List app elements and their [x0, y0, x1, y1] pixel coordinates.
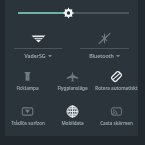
staticText: Ficklampa: [16, 85, 39, 91]
staticText: VaderSG: [24, 52, 46, 59]
button[interactable]: Bluetooth: [75, 28, 134, 59]
staticText: Bluetooth: [89, 52, 114, 59]
button[interactable]: Brightness: [5, 4, 138, 22]
staticText: Rotera automatiskt: [95, 85, 138, 91]
button[interactable]: Rotera automatiskt: [94, 67, 138, 91]
staticText: Casta skärmen: [100, 120, 133, 126]
staticText: Trådlös surfzon: [11, 120, 45, 126]
button[interactable]: Casta skärmen: [94, 102, 138, 126]
button[interactable]: Ficklampa: [5, 67, 50, 91]
button[interactable]: Mobildata: [50, 102, 94, 126]
button[interactable]: Trådlös surfzon: [5, 102, 50, 126]
button[interactable]: VaderSG: [9, 28, 67, 59]
staticText: Flygplansläge: [57, 85, 88, 91]
button[interactable]: Flygplansläge: [50, 67, 94, 91]
staticText: Mobildata: [61, 120, 84, 126]
